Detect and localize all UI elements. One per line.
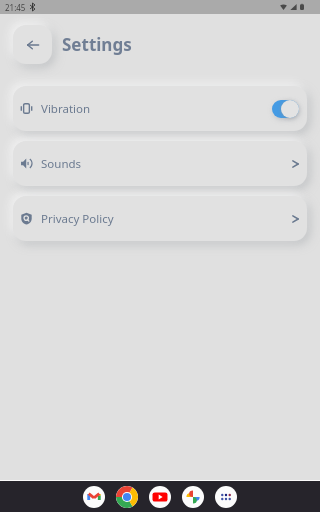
staticText: Privacy Policy bbox=[41, 211, 114, 227]
button[interactable]: All apps bbox=[215, 486, 237, 508]
staticText: Settings bbox=[62, 33, 132, 56]
button[interactable]: Open Privacy Policy bbox=[281, 210, 299, 228]
button[interactable]: Back bbox=[13, 25, 52, 64]
staticText: Vibration bbox=[41, 101, 91, 117]
button[interactable]: Privacy Policy bbox=[13, 196, 307, 241]
button[interactable]: Open Sounds bbox=[281, 155, 299, 173]
button[interactable]: YouTube bbox=[149, 486, 171, 508]
staticText: 21:45 bbox=[5, 2, 26, 13]
button[interactable]: Sounds bbox=[13, 141, 307, 186]
button[interactable]: Gmail bbox=[83, 486, 105, 508]
button[interactable]: Photos bbox=[182, 486, 204, 508]
button[interactable]: Vibration bbox=[13, 86, 307, 131]
staticText: Sounds bbox=[41, 156, 82, 172]
button[interactable]: Vibration on bbox=[272, 100, 299, 118]
button[interactable]: Chrome bbox=[116, 486, 138, 508]
